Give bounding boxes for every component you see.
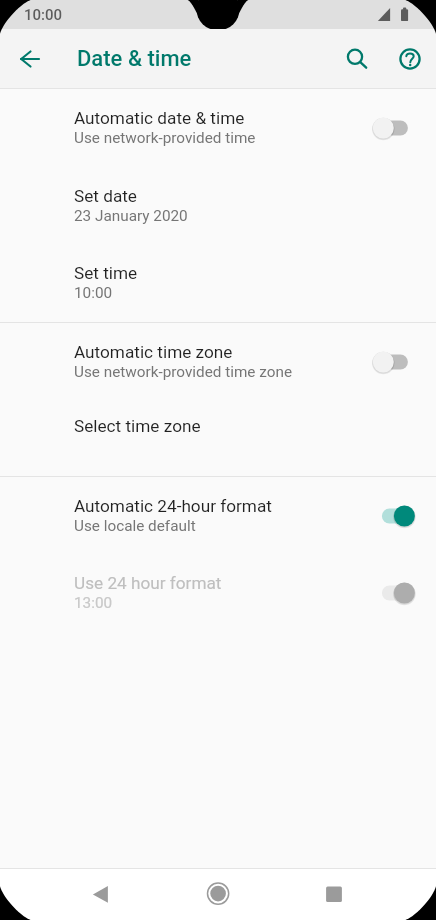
staticText: Automatic date & time: [74, 108, 245, 128]
staticText: Set time: [74, 263, 138, 283]
staticText: Use network-provided time zone: [74, 363, 292, 381]
button[interactable]: Automatic date & time: [0, 89, 436, 167]
button[interactable]: Automatic time zone: [0, 323, 436, 400]
button[interactable]: Navigate up: [2, 31, 58, 87]
button[interactable]: Automatic 24-hour format: [0, 477, 436, 554]
staticText: 10:00: [74, 284, 113, 302]
button[interactable]: Help: [386, 35, 434, 83]
staticText: Use 24 hour format: [74, 573, 222, 593]
staticText: Automatic time zone: [74, 342, 233, 362]
button[interactable]: Select time zone: [0, 397, 436, 476]
staticText: 23 January 2020: [74, 207, 188, 225]
staticText: 13:00: [74, 594, 113, 612]
staticText: 10:00: [24, 6, 63, 24]
staticText: Use locale default: [74, 517, 196, 535]
staticText: Date & time: [77, 46, 192, 72]
staticText: Automatic 24-hour format: [74, 496, 272, 516]
button[interactable]: Use 24 hour format: [0, 554, 436, 631]
button[interactable]: Recent apps: [310, 879, 358, 920]
button[interactable]: Back: [76, 879, 124, 920]
button[interactable]: Search: [333, 35, 381, 83]
button[interactable]: Home: [194, 879, 242, 920]
staticText: Select time zone: [74, 416, 201, 436]
button[interactable]: Set date: [0, 167, 436, 245]
staticText: Use network-provided time: [74, 129, 256, 147]
button[interactable]: Set time: [0, 244, 436, 322]
staticText: Set date: [74, 186, 137, 206]
